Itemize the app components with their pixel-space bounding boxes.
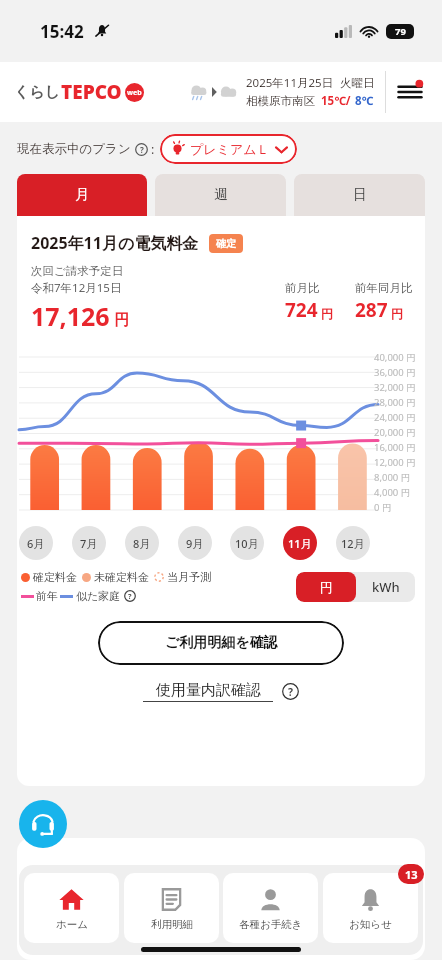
staticText: 12月	[341, 536, 365, 551]
staticText: ?	[128, 591, 132, 601]
button[interactable]: 日	[294, 174, 425, 216]
staticText: 日	[353, 186, 367, 204]
staticText: 16,000 円	[374, 441, 416, 454]
staticText: 17,126	[31, 299, 110, 333]
button[interactable]: Support	[19, 800, 67, 848]
staticText: 0 円	[374, 501, 392, 514]
staticText: 現在表示中のプラン	[17, 141, 131, 157]
button[interactable]: 2025年11月25日	[188, 75, 375, 109]
staticText: 各種お手続き	[239, 918, 303, 931]
staticText: くらし	[14, 83, 61, 102]
staticText: 火曜日	[340, 76, 375, 90]
staticText: 利用明細	[151, 918, 193, 931]
staticText: ?	[288, 685, 294, 699]
staticText: :	[151, 141, 155, 158]
staticText: 15:42	[40, 20, 84, 43]
staticText: 次回ご請求予定日	[31, 264, 124, 278]
staticText: 円	[114, 311, 129, 330]
button[interactable]: ご利用明細を確認	[98, 621, 344, 665]
staticText: 15℃/	[321, 93, 351, 109]
staticText: 令和7年12月15日	[31, 280, 122, 296]
button[interactable]: 8月	[125, 526, 159, 560]
staticText: お知らせ	[349, 918, 392, 931]
staticText: 10月	[235, 536, 259, 551]
staticText: web	[127, 88, 142, 98]
button[interactable]: 利用明細	[124, 873, 219, 943]
button[interactable]: Menu	[390, 72, 430, 112]
staticText: 7月	[80, 536, 98, 551]
button[interactable]: 12月	[336, 526, 370, 560]
staticText: 36,000 円	[374, 366, 416, 379]
staticText: ご利用明細を確認	[165, 634, 278, 652]
staticText: 20,000 円	[374, 426, 416, 439]
staticText: 8℃	[355, 93, 374, 109]
staticText: 11月	[288, 536, 312, 551]
staticText: ホーム	[56, 918, 88, 931]
staticText: 2025年11月の電気料金	[31, 232, 199, 254]
button[interactable]: 週	[155, 174, 286, 216]
button[interactable]: 各種お手続き	[223, 873, 318, 943]
staticText: プレミアムＬ	[190, 141, 270, 157]
staticText: 2025年11月25日	[246, 75, 334, 91]
button[interactable]: 6月	[19, 526, 53, 560]
staticText: 円	[321, 306, 333, 321]
staticText: 12,000 円	[374, 456, 416, 469]
button[interactable]: お知らせ	[323, 873, 418, 943]
staticText: 週	[214, 186, 228, 204]
button[interactable]: 11月	[283, 526, 317, 560]
staticText: 724	[285, 297, 318, 323]
staticText: 使用量内訳確認	[156, 681, 261, 700]
button[interactable]: ホーム	[24, 873, 119, 943]
staticText: 確定料金	[33, 570, 77, 584]
staticText: 確定	[216, 237, 236, 250]
staticText: 8月	[133, 536, 151, 551]
staticText: 287	[355, 297, 388, 323]
staticText: TEPCO	[61, 79, 122, 105]
button[interactable]: 円	[296, 572, 356, 602]
staticText: 9月	[186, 536, 204, 551]
button[interactable]: kWh	[356, 572, 415, 602]
staticText: 79	[395, 25, 406, 38]
button[interactable]: 10月	[230, 526, 264, 560]
staticText: 前年	[36, 589, 58, 603]
staticText: 相模原市南区	[246, 94, 315, 108]
button[interactable]: くらし	[14, 79, 144, 105]
staticText: 月	[75, 186, 89, 204]
staticText: 8,000 円	[374, 471, 411, 484]
staticText: 当月予測	[167, 570, 211, 584]
staticText: 円	[391, 306, 403, 321]
staticText: 32,000 円	[374, 381, 416, 394]
staticText: 40,000 円	[374, 351, 416, 364]
staticText: 円	[320, 579, 333, 595]
staticText: 似た家庭	[76, 589, 121, 603]
staticText: 前月比	[285, 281, 320, 295]
staticText: kWh	[372, 578, 400, 596]
staticText: 6月	[27, 536, 45, 551]
staticText: ?	[140, 144, 144, 155]
staticText: 13	[405, 867, 418, 882]
button[interactable]: 使用量内訳確認	[143, 681, 273, 702]
staticText: 未確定料金	[94, 570, 149, 584]
button[interactable]: 7月	[72, 526, 106, 560]
button[interactable]: 月	[17, 174, 147, 216]
staticText: 24,000 円	[374, 411, 416, 424]
button[interactable]: プレミアムＬ	[160, 134, 297, 164]
staticText: 28,000 円	[374, 396, 416, 409]
button[interactable]: 9月	[178, 526, 212, 560]
staticText: 前年同月比	[355, 281, 413, 295]
staticText: 4,000 円	[374, 486, 411, 499]
